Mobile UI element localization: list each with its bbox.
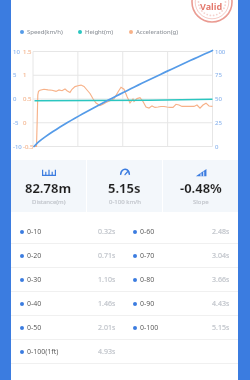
staticText: -5 (13, 119, 19, 127)
staticText: 0.71s (98, 251, 116, 261)
staticText: 25 (215, 119, 222, 127)
staticText: 0.32s (98, 227, 116, 237)
staticText: 5 (13, 71, 17, 79)
staticText: 4.93s (98, 347, 116, 357)
staticText: 1 (23, 71, 27, 79)
button[interactable]: 0-70 (124, 244, 238, 267)
staticText: 0-90 (140, 299, 155, 309)
staticText: 3.04s (212, 251, 230, 261)
button[interactable]: 0-100 (124, 316, 238, 339)
button[interactable]: 5.15s (87, 160, 162, 212)
staticText: 5.15s (108, 179, 141, 197)
staticText: -0.5 (23, 143, 34, 151)
button[interactable]: 0-80 (124, 268, 238, 291)
button[interactable]: -0.48% (163, 160, 238, 212)
staticText: 4.43s (212, 299, 230, 309)
staticText: 100 (215, 48, 226, 56)
staticText: Distance(m) (32, 198, 66, 206)
staticText: 0-50 (27, 323, 42, 333)
staticText: 75 (215, 71, 222, 79)
staticText: 1.5 (23, 48, 32, 56)
staticText: Speed(km/h) (27, 28, 63, 36)
staticText: Valid (200, 0, 223, 12)
staticText: Height(m) (85, 28, 114, 36)
staticText: 0-10 (27, 227, 42, 237)
staticText: 0.5 (23, 95, 32, 103)
button[interactable]: 0-30 (11, 268, 124, 291)
staticText: 1.46s (98, 299, 116, 309)
button[interactable]: 0-10 (11, 220, 124, 243)
staticText: 0 (23, 119, 27, 127)
staticText: 0-40 (27, 299, 42, 309)
staticText: 0-100(1ft) (27, 347, 59, 357)
staticText: 1.10s (98, 275, 116, 285)
staticText: 0 (13, 95, 17, 103)
button[interactable]: 0-20 (11, 244, 124, 267)
staticText: 3.66s (212, 275, 230, 285)
button[interactable]: 0-90 (124, 292, 238, 315)
staticText: 2.01s (98, 323, 116, 333)
staticText: Acceleration(g) (136, 28, 178, 36)
staticText: 0-100 km/h (109, 198, 141, 206)
staticText: 0-30 (27, 275, 42, 285)
staticText: 0-70 (140, 251, 155, 261)
button[interactable]: 82.78m (11, 160, 86, 212)
button[interactable]: 0-100(1ft) (11, 340, 124, 363)
staticText: 0-100 (140, 323, 159, 333)
button[interactable]: 0-40 (11, 292, 124, 315)
staticText: -10 (13, 143, 22, 151)
staticText: 5.15s (212, 323, 230, 333)
button[interactable]: 0-60 (124, 220, 238, 243)
staticText: 10 (13, 48, 20, 56)
staticText: 0-20 (27, 251, 42, 261)
staticText: -0.48% (180, 179, 222, 197)
staticText: 0-60 (140, 227, 155, 237)
staticText: 0 (215, 143, 219, 151)
staticText: 2.48s (212, 227, 230, 237)
staticText: 0-80 (140, 275, 155, 285)
staticText: 82.78m (25, 179, 72, 197)
staticText: 50 (215, 95, 222, 103)
button[interactable]: 0-50 (11, 316, 124, 339)
staticText: Slope (193, 198, 209, 206)
